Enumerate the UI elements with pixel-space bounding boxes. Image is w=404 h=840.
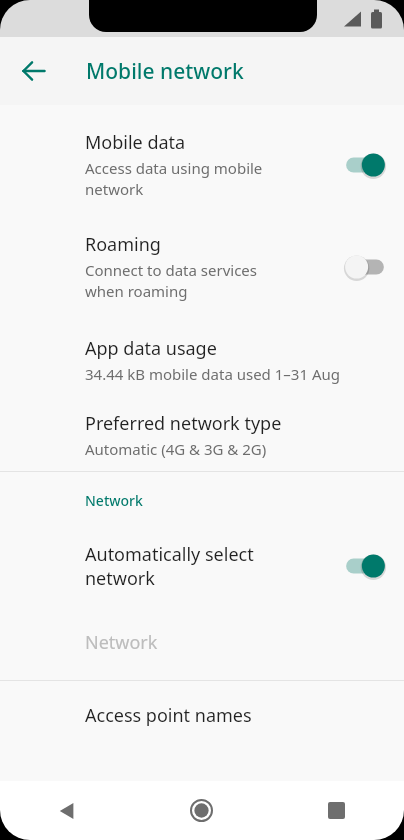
staticText: Network — [85, 491, 143, 510]
staticText: Connect to data services when roaming — [85, 260, 258, 302]
button[interactable]: Back — [0, 781, 134, 840]
button[interactable]: Access point names — [0, 681, 404, 781]
button[interactable]: Preferred network type — [0, 399, 404, 471]
staticText: App data usage — [85, 336, 217, 361]
button[interactable]: Automatically select network — [0, 528, 404, 604]
button[interactable]: Roaming — [0, 213, 404, 321]
staticText: Automatic (4G & 3G & 2G) — [85, 439, 267, 459]
staticText: Preferred network type — [85, 411, 282, 436]
button[interactable]: Back — [12, 49, 56, 93]
button[interactable]: Home — [134, 781, 269, 840]
staticText: 34.44 kB mobile data used 1–31 Aug — [85, 364, 340, 384]
button[interactable]: Toggle on — [342, 152, 388, 178]
staticText: Access data using mobile network — [85, 158, 263, 200]
button[interactable]: Toggle on — [342, 553, 388, 579]
button[interactable]: Recent apps — [269, 781, 404, 840]
button[interactable]: Toggle off — [342, 254, 388, 280]
staticText: Roaming — [85, 232, 161, 257]
button[interactable]: App data usage — [0, 321, 404, 399]
staticText: Mobile data — [85, 130, 186, 155]
staticText: Mobile network — [86, 57, 244, 86]
staticText: Network — [85, 630, 158, 655]
staticText: Automatically select network — [85, 542, 254, 590]
button[interactable]: Network — [0, 604, 404, 680]
button[interactable]: Mobile data — [0, 117, 404, 213]
staticText: Access point names — [85, 703, 252, 728]
